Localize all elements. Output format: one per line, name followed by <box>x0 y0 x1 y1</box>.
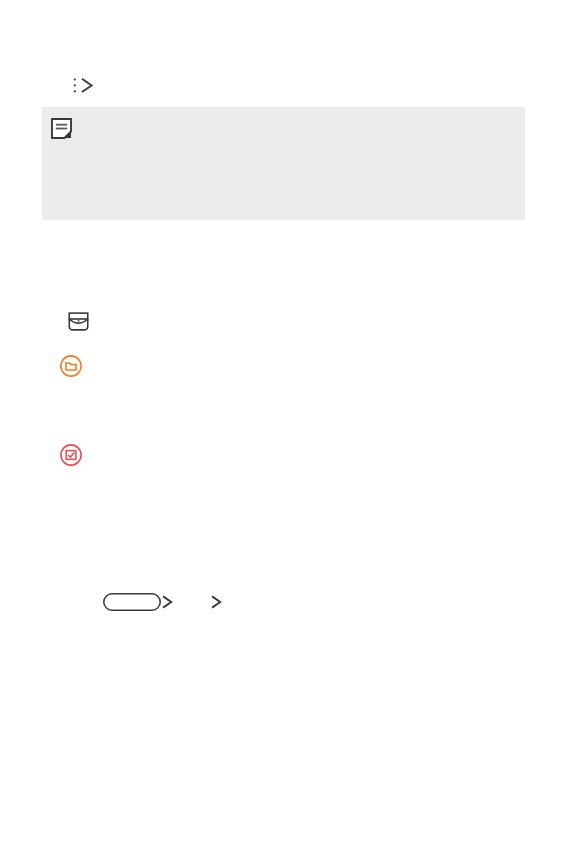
button[interactable]: More options <box>70 74 100 96</box>
button[interactable]: Inbox <box>68 311 89 332</box>
button[interactable]: Tasks <box>60 444 82 466</box>
button[interactable]: Note <box>52 119 71 138</box>
button[interactable]: Next <box>160 592 174 612</box>
button[interactable]: Folder <box>60 355 82 377</box>
button[interactable]: Next <box>209 592 223 612</box>
button[interactable]: Note <box>42 107 525 220</box>
button[interactable]: Button <box>103 593 161 611</box>
